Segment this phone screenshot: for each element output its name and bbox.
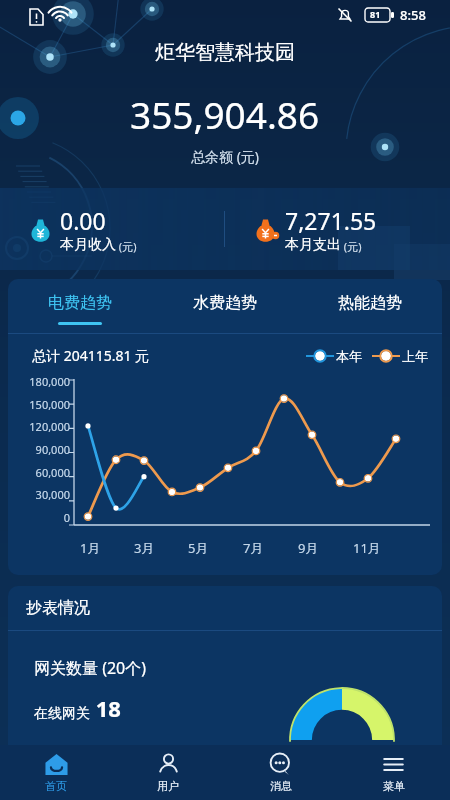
staticText: 81 [370, 8, 381, 20]
staticText: 热能趋势 [338, 293, 402, 313]
staticText: 7,271.55 [285, 205, 377, 236]
button[interactable]: 菜单 [337, 745, 450, 800]
staticText: 30,000 [35, 487, 70, 502]
staticText: 150,000 [29, 397, 70, 412]
button[interactable]: 电费趋势 [8, 279, 152, 333]
staticText: 0 [63, 510, 70, 525]
staticText: 120,000 [29, 419, 70, 434]
staticText: 总计 204115.81 元 [32, 346, 150, 365]
button[interactable]: 用户 [112, 745, 224, 800]
staticText: 8:58 [400, 6, 426, 24]
staticText: 在线网关 [34, 705, 90, 723]
staticText: 首页 [45, 779, 67, 793]
button[interactable]: 7,271.55 [225, 188, 450, 270]
staticText: 5月 [188, 539, 209, 557]
button[interactable]: 0.00 [0, 188, 224, 270]
staticText: 9月 [298, 539, 319, 557]
button[interactable]: 热能趋势 [297, 279, 442, 333]
button[interactable]: 水费趋势 [152, 279, 297, 333]
staticText: 1月 [80, 539, 101, 557]
staticText: 抄表情况 [26, 598, 90, 618]
staticText: 网关数量 (20个) [34, 657, 147, 679]
staticText: (元) [341, 239, 362, 254]
staticText: 总余额 (元) [191, 147, 260, 166]
staticText: 用户 [157, 779, 179, 793]
staticText: 消息 [270, 779, 292, 793]
staticText: 本月收入 [60, 236, 116, 254]
staticText: 上年 [402, 348, 428, 364]
staticText: 电费趋势 [48, 293, 112, 313]
staticText: 3月 [134, 539, 155, 557]
staticText: 0.00 [60, 205, 106, 236]
staticText: 本年 [336, 348, 362, 364]
button[interactable]: 消息 [224, 745, 337, 800]
staticText: 180,000 [29, 374, 70, 389]
staticText: 90,000 [35, 442, 70, 457]
staticText: 水费趋势 [193, 293, 257, 313]
staticText: (元) [116, 239, 137, 254]
staticText: 7月 [243, 539, 264, 557]
staticText: 355,904.86 [130, 89, 320, 139]
staticText: 本月支出 [285, 236, 341, 254]
staticText: 炬华智慧科技园 [155, 40, 295, 65]
staticText: 菜单 [383, 779, 405, 793]
staticText: 60,000 [35, 465, 70, 480]
staticText: 18 [90, 693, 121, 723]
button[interactable]: 首页 [0, 745, 112, 800]
staticText: 11月 [353, 539, 381, 557]
